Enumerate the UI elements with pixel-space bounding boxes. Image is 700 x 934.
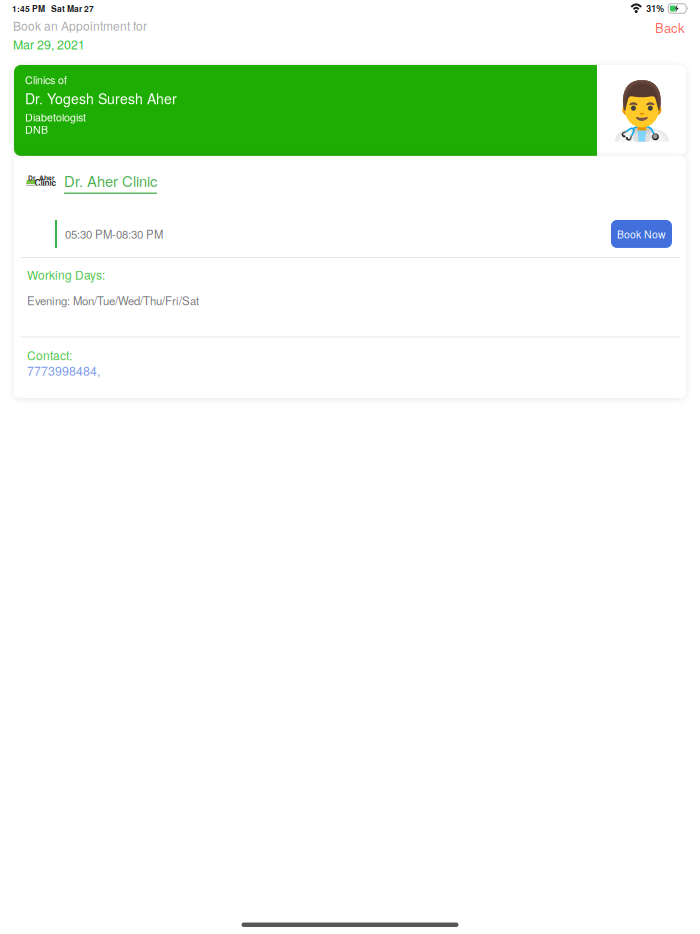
staticText: Dr. Yogesh Suresh Aher bbox=[25, 88, 177, 108]
staticText: Clinics of bbox=[25, 72, 67, 87]
staticText: 05:30 PM-08:30 PM bbox=[65, 226, 163, 242]
staticText: Dr. Aher Clinic bbox=[64, 170, 157, 191]
staticText: Evening: Mon/Tue/Wed/Thu/Fri/Sat bbox=[27, 292, 199, 308]
staticText: Book an Appointment for bbox=[13, 17, 147, 34]
staticText: Book Now bbox=[617, 226, 666, 241]
staticText: 1:45 PM Sat Mar 27 bbox=[12, 2, 94, 15]
staticText: 👨‍⚕️ bbox=[606, 78, 676, 143]
button[interactable]: Dr. Aher Clinic bbox=[52, 166, 157, 194]
staticText: Clinic bbox=[34, 177, 56, 188]
staticText: Diabetologist bbox=[25, 109, 86, 125]
staticText: 7773998484, bbox=[27, 361, 100, 379]
button[interactable]: Back bbox=[655, 17, 687, 37]
staticText: 31% bbox=[646, 2, 664, 15]
staticText: Dr. Aher bbox=[28, 173, 55, 182]
staticText: DNB bbox=[25, 121, 48, 137]
button[interactable]: 7773998484, bbox=[14, 363, 100, 379]
staticText: Working Days: bbox=[27, 266, 105, 283]
staticText: Contact: bbox=[27, 346, 72, 364]
staticText: Mar 29, 2021 bbox=[13, 35, 85, 53]
button[interactable]: Book Now bbox=[611, 220, 672, 248]
staticText: Back bbox=[655, 18, 685, 37]
